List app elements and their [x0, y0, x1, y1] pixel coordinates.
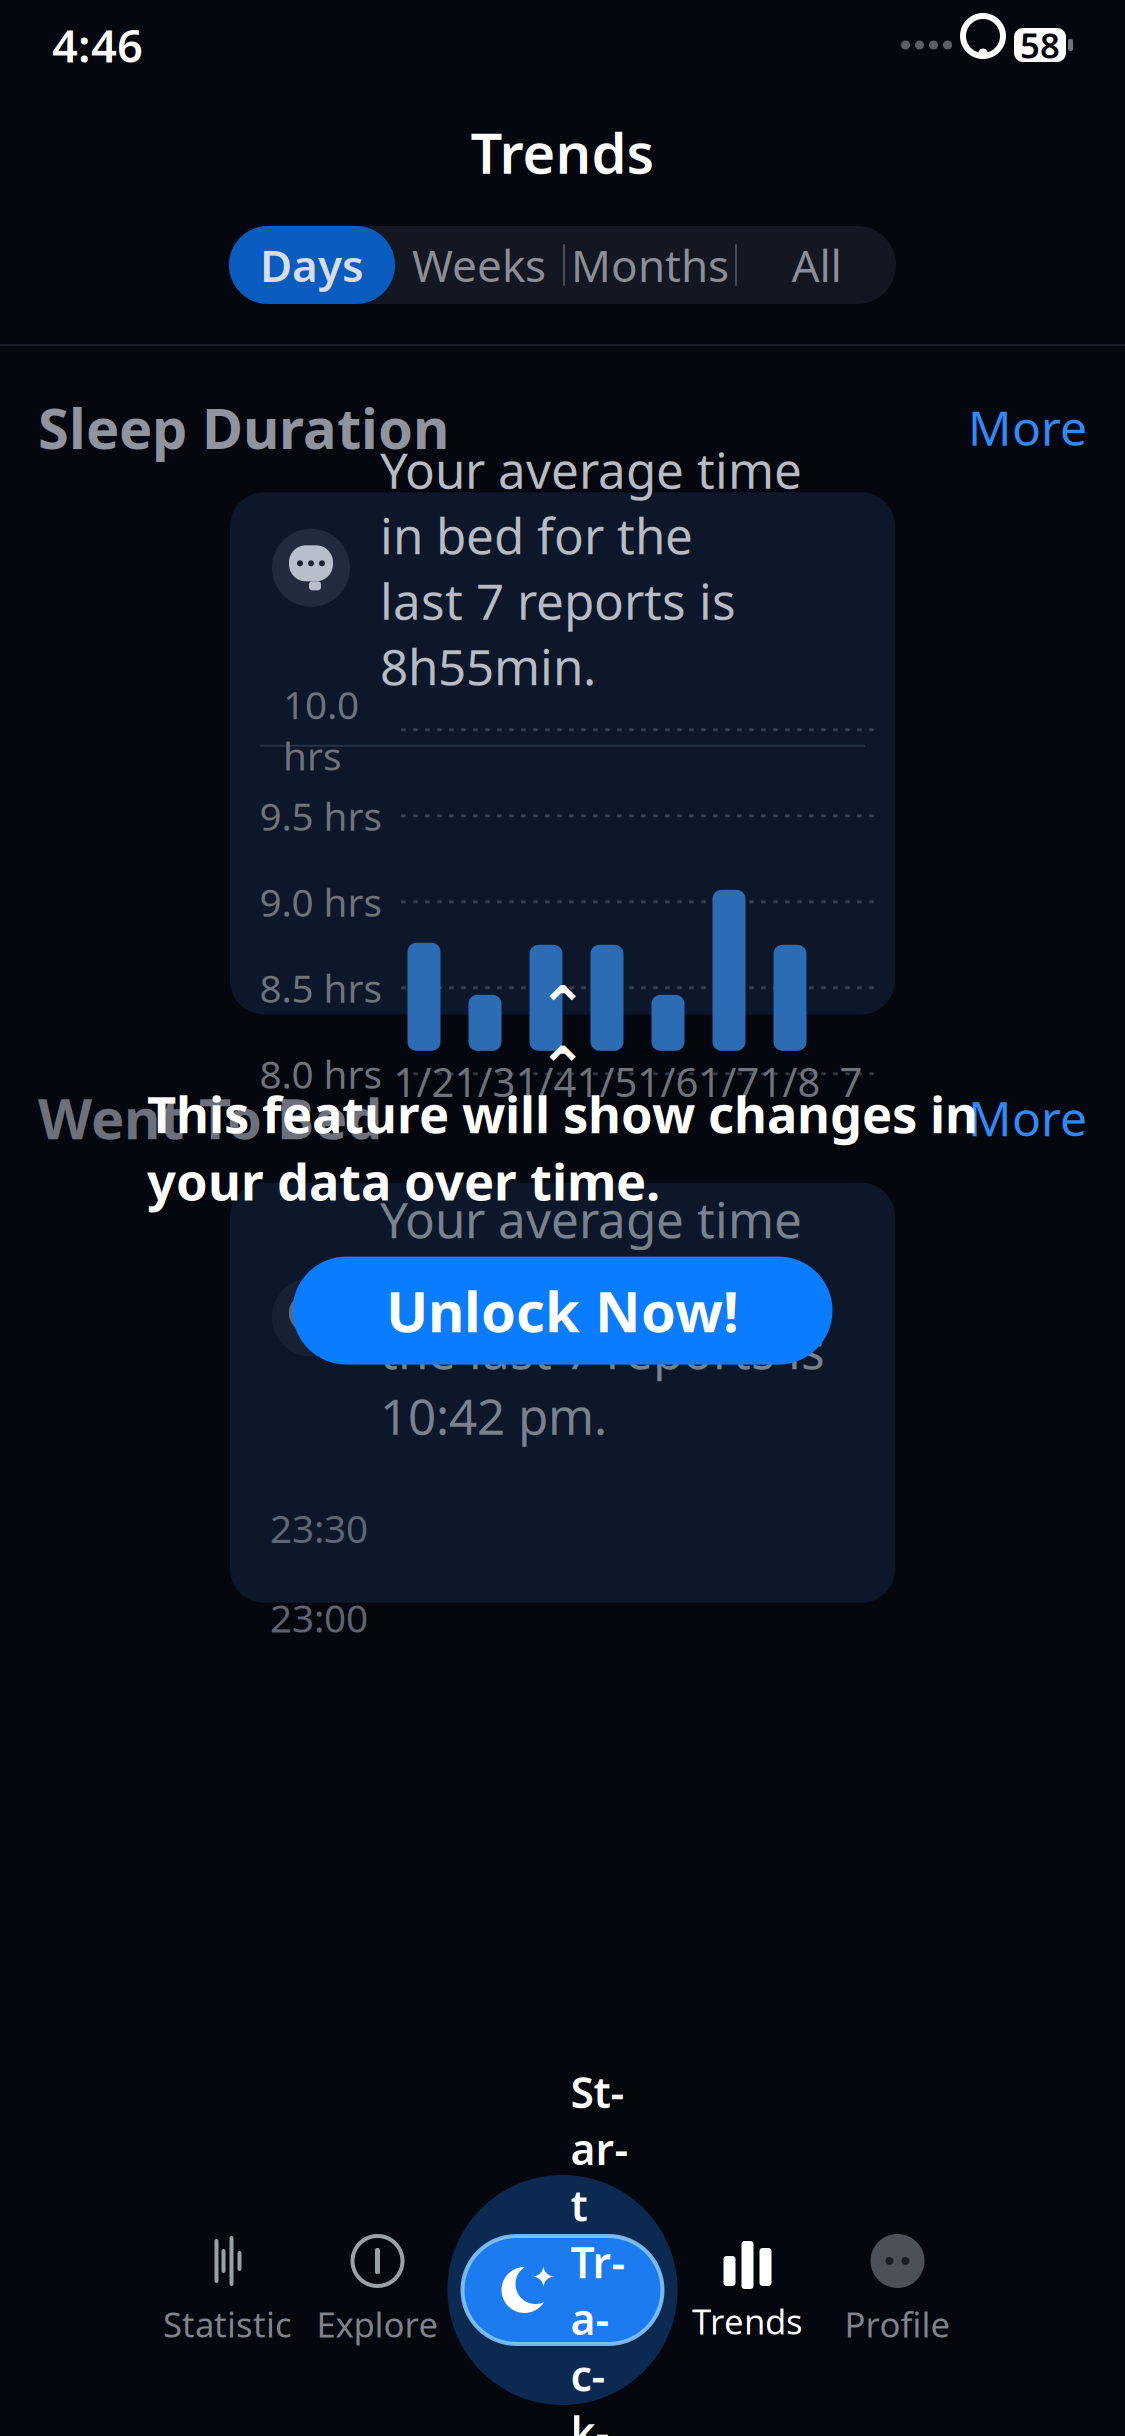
staticText: ⌃ — [538, 974, 587, 1041]
staticText: ✦ — [531, 2260, 556, 2294]
staticText: Unlock Now! — [386, 1273, 739, 1348]
staticText: 8.5 hrs — [259, 962, 382, 1013]
button[interactable]: Weeks — [395, 226, 563, 304]
staticText: 23:00 — [270, 1592, 368, 1643]
staticText: ⌃ — [538, 1035, 587, 1102]
staticText: 23:30 — [270, 1502, 368, 1554]
staticText: 4:46 — [52, 15, 143, 75]
button[interactable]: ✦ — [462, 2236, 662, 2344]
staticText: 1/6 — [637, 1055, 698, 1108]
staticText: Days — [260, 236, 364, 294]
staticText: Your average time to go to bed for the l… — [380, 1186, 825, 1448]
button[interactable]: Profile — [822, 2233, 972, 2347]
button[interactable]: More — [968, 1086, 1087, 1149]
staticText: Explore — [316, 2301, 438, 2347]
button[interactable]: Trends — [672, 2236, 822, 2344]
staticText: Weeks — [412, 236, 546, 294]
staticText: More — [968, 1086, 1087, 1149]
staticText: 8.0 hrs — [259, 1048, 382, 1099]
staticText: 1/2 — [393, 1055, 454, 1108]
staticText: Months — [571, 236, 729, 294]
staticText: 9.5 hrs — [259, 790, 382, 841]
staticText: 7 — [839, 1055, 862, 1108]
staticText: All — [791, 236, 841, 294]
staticText: Your average time in bed for the last 7 … — [380, 437, 802, 699]
button[interactable]: Months — [565, 226, 735, 304]
staticText: Sleep Duration — [38, 390, 449, 464]
button[interactable]: Unlock Now! — [292, 1257, 832, 1365]
staticText: 9.0 hrs — [259, 876, 382, 927]
staticText: 10.0 hrs — [283, 678, 359, 781]
button[interactable]: Days — [229, 226, 395, 304]
staticText: Trends — [692, 2298, 803, 2344]
button[interactable]: Statistic — [152, 2233, 302, 2347]
staticText: 58 — [1020, 22, 1060, 68]
staticText: 1/3 — [454, 1055, 515, 1108]
staticText: Went To Bed — [38, 1080, 382, 1155]
staticText: This feature will show changes in your d… — [147, 1080, 978, 1215]
staticText: More — [968, 395, 1087, 459]
button[interactable]: Explore — [302, 2233, 452, 2347]
button[interactable]: All — [737, 226, 896, 304]
staticText: Start Tracker — [570, 2063, 628, 2436]
staticText: 1/4 — [515, 1055, 576, 1108]
staticText: Profile — [844, 2301, 950, 2347]
staticText: Trends — [470, 115, 654, 189]
staticText: 1/5 — [576, 1055, 637, 1108]
staticText: 1/7 — [698, 1055, 759, 1108]
staticText: 1/8 — [759, 1055, 820, 1108]
staticText: Statistic — [163, 2301, 292, 2347]
button[interactable]: More — [968, 395, 1087, 459]
